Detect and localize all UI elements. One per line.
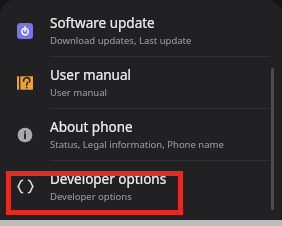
other: About phone <box>0 127 50 143</box>
other: Software update <box>0 23 50 39</box>
staticText: Software update <box>50 14 155 32</box>
staticText: Status, Legal information, Phone name <box>50 138 224 151</box>
button[interactable]: Software update <box>0 5 282 56</box>
other: User manual <box>0 75 50 91</box>
staticText: User manual <box>50 86 107 99</box>
button[interactable]: About phone <box>0 109 282 160</box>
other: Developer options <box>0 177 50 196</box>
staticText: Developer options <box>50 170 167 188</box>
staticText: Developer options <box>50 190 132 203</box>
staticText: About phone <box>50 118 133 136</box>
button[interactable]: User manual <box>0 57 282 108</box>
button[interactable]: Developer options <box>0 161 282 212</box>
staticText: Download updates, Last update <box>50 34 192 47</box>
staticText: User manual <box>50 66 131 84</box>
